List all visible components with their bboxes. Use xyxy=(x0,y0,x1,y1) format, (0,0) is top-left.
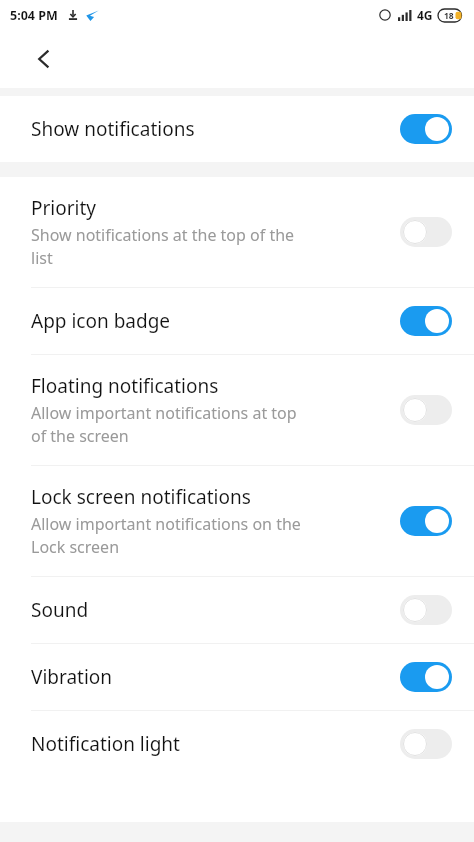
staticText: Priority xyxy=(31,195,97,221)
button[interactable]: Priority xyxy=(0,177,474,287)
staticText: Lock screen notifications xyxy=(31,484,251,510)
staticText: Show notifications xyxy=(31,116,195,142)
staticText: Vibration xyxy=(31,664,113,690)
staticText: Floating notifications xyxy=(31,373,219,399)
staticText: Allow important notifications on the Loc… xyxy=(31,513,301,558)
button[interactable]: Lock screen notifications xyxy=(0,466,474,576)
button[interactable]: Vibration xyxy=(0,644,474,710)
button[interactable]: Back xyxy=(22,37,66,81)
button[interactable]: Notification light xyxy=(0,711,474,777)
button[interactable]: App icon badge xyxy=(0,288,474,354)
staticText: Show notifications at the top of the lis… xyxy=(31,224,295,269)
button[interactable]: Sound xyxy=(0,577,474,643)
staticText: 18 xyxy=(444,10,454,22)
button[interactable]: Show notifications xyxy=(0,96,474,162)
staticText: Sound xyxy=(31,597,89,623)
button[interactable]: Floating notifications xyxy=(0,355,474,465)
staticText: App icon badge xyxy=(31,308,171,334)
staticText: 5:04 PM xyxy=(10,7,58,24)
staticText: Allow important notifications at top of … xyxy=(31,402,297,447)
staticText: Notification light xyxy=(31,731,180,757)
staticText: 4G xyxy=(417,7,433,23)
